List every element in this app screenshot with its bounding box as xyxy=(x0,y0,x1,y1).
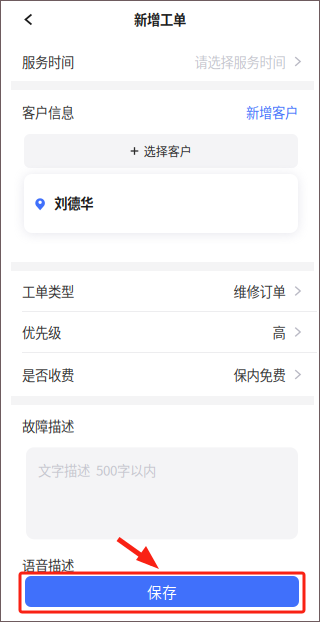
button[interactable]: 保存 xyxy=(25,576,299,607)
button[interactable]: 是否收费 xyxy=(0,353,320,396)
staticText: 维修订单 xyxy=(233,281,285,301)
button[interactable]: 工单类型 xyxy=(0,271,320,311)
staticText: 高 xyxy=(272,322,285,342)
staticText: 保内免费 xyxy=(233,365,285,384)
staticText: 故障描述 xyxy=(22,416,74,435)
button[interactable]: 新增客户 xyxy=(246,102,298,122)
button[interactable]: 刘德华 xyxy=(24,174,298,233)
button[interactable]: 选择客户 xyxy=(24,134,298,168)
button[interactable]: 返回 xyxy=(0,0,50,36)
staticText: 请选择服务时间 xyxy=(194,52,285,71)
staticText: 新增工单 xyxy=(134,9,186,29)
staticText: 保存 xyxy=(147,581,177,602)
button[interactable]: 服务时间 xyxy=(0,36,320,81)
staticText: 新增客户 xyxy=(246,102,298,122)
staticText: 工单类型 xyxy=(22,281,74,301)
staticText: 客户信息 xyxy=(22,102,74,122)
staticText: 优先级 xyxy=(22,322,61,342)
staticText: 刘德华 xyxy=(54,193,93,212)
staticText: 文字描述 500字以内 xyxy=(38,460,156,480)
button[interactable]: 优先级 xyxy=(0,312,320,352)
staticText: 语音描述 xyxy=(22,555,74,575)
staticText: 是否收费 xyxy=(22,365,74,384)
staticText: 选择客户 xyxy=(144,142,192,160)
staticText: 服务时间 xyxy=(22,52,74,71)
